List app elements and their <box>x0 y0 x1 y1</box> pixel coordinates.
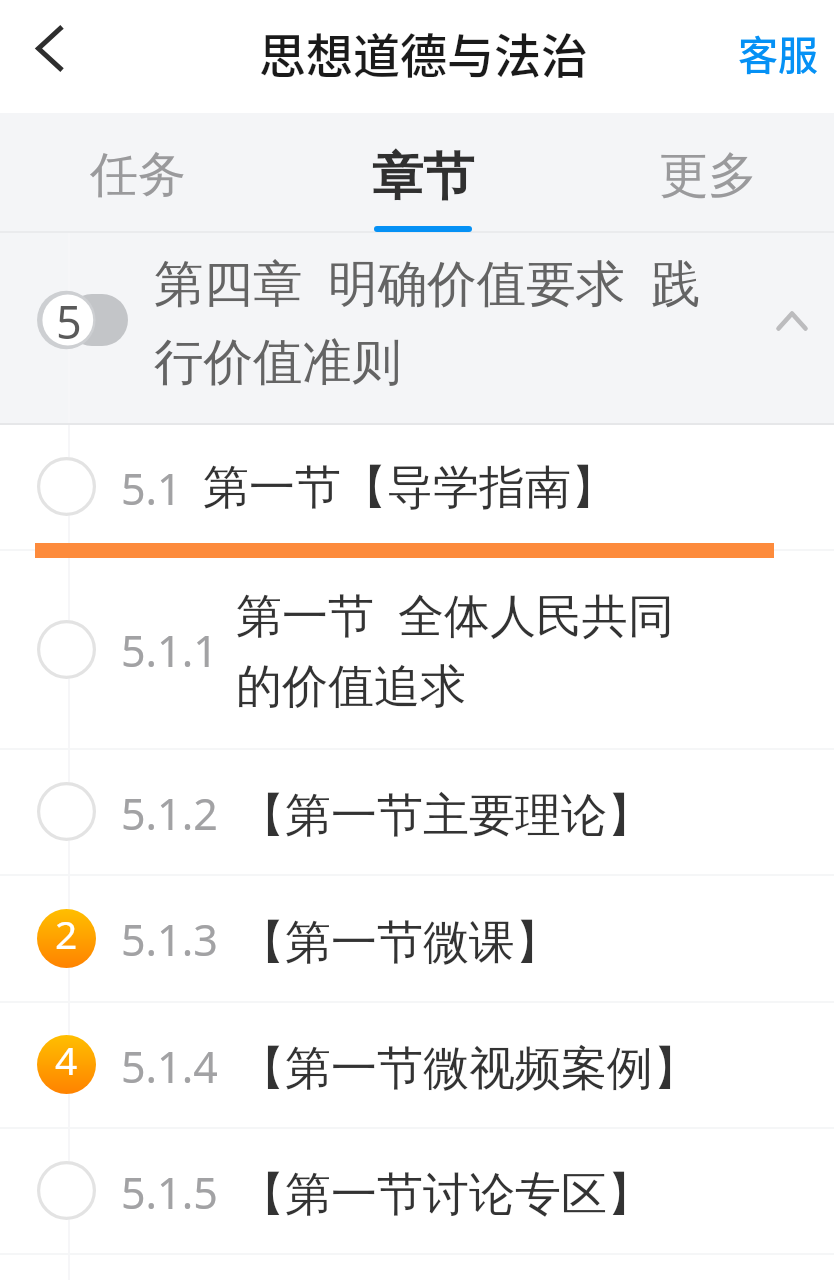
staticText: 思想道德与法治 <box>259 27 588 85</box>
staticText: 更多 <box>659 145 757 207</box>
button[interactable]: Back <box>0 0 100 113</box>
button[interactable]: 5 <box>0 232 834 423</box>
staticText: 5.1.2 <box>121 784 218 843</box>
button[interactable]: 章节 <box>298 113 548 232</box>
staticText: 的价值追求 <box>236 650 466 720</box>
staticText: 【第一节微课】 <box>239 906 561 976</box>
staticText: 4 <box>55 1044 78 1084</box>
staticText: 任务 <box>90 145 186 205</box>
button[interactable]: 客服 <box>718 0 834 113</box>
button[interactable]: Collapse chapter <box>747 232 834 423</box>
staticText: 章节 <box>372 145 474 209</box>
staticText: 【第一节微视频案例】 <box>239 1032 699 1102</box>
staticText: 5 <box>56 303 82 349</box>
button[interactable]: 5.1.1 <box>0 550 834 749</box>
staticText: 5.1 <box>121 459 182 518</box>
staticText: 【第一节主要理论】 <box>239 779 653 849</box>
staticText: 客服 <box>738 30 818 80</box>
button[interactable]: 4 <box>0 1002 834 1128</box>
button[interactable]: 5.1.5 <box>0 1128 834 1254</box>
staticText: 5.1.5 <box>121 1163 218 1222</box>
staticText: 5.1.3 <box>121 910 218 969</box>
staticText: 第一节 全体人民共同 <box>236 577 674 650</box>
button[interactable]: 任务 <box>13 113 263 232</box>
button[interactable]: 5.1 <box>0 424 834 550</box>
staticText: 5.1.1 <box>121 621 218 680</box>
button[interactable]: 2 <box>0 875 834 1002</box>
staticText: 第一节【导学指南】 <box>203 451 617 521</box>
button[interactable]: 5.1.2 <box>0 749 834 875</box>
staticText: 【第一节讨论专区】 <box>239 1158 653 1228</box>
staticText: 2 <box>55 918 78 958</box>
button[interactable]: 更多 <box>583 113 833 232</box>
staticText: 第四章 明确价值要求 践行价值准则 <box>154 240 714 399</box>
staticText: 5.1.4 <box>121 1037 218 1096</box>
